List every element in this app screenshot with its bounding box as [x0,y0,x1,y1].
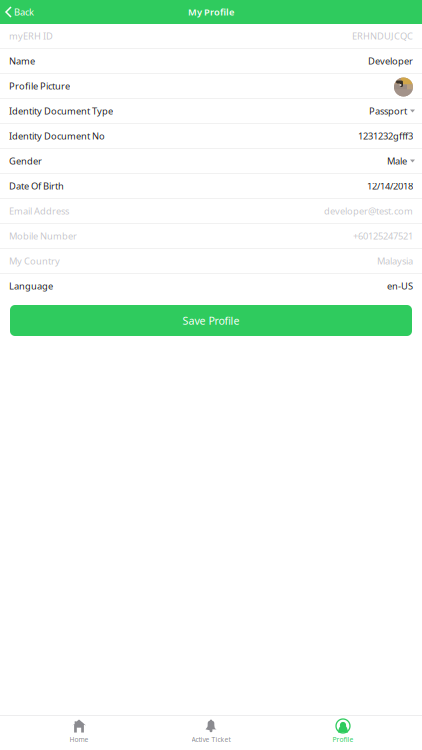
staticText: Back [14,6,34,18]
staticText: Identity Document Type [9,105,113,117]
button[interactable]: Home [13,716,145,750]
button[interactable]: Mobile Number [0,224,422,248]
staticText: Gender [9,155,42,167]
staticText: My Profile [188,6,234,18]
staticText: Date Of Birth [9,180,64,192]
button[interactable]: Profile [277,716,409,750]
button[interactable]: Language [0,274,422,298]
staticText: 12/14/2018 [367,180,413,192]
button[interactable]: Back [0,0,39,24]
staticText: Language [9,280,53,292]
button[interactable]: Date Of Birth [0,174,422,198]
staticText: My Country [9,255,60,267]
button[interactable]: My Country [0,249,422,273]
staticText: Save Profile [182,313,239,328]
staticText: Mobile Number [9,230,77,242]
button[interactable]: Email Address [0,199,422,223]
staticText: Active Ticket [191,735,230,744]
staticText: Passport [369,105,407,117]
staticText: 1231232gfff3 [358,130,413,142]
button[interactable]: Active Ticket [145,716,277,750]
staticText: Name [9,55,35,67]
button[interactable]: Save Profile [10,305,412,336]
button[interactable]: myERH ID [0,24,422,48]
button[interactable]: Identity Document Type [0,99,422,123]
staticText: Home [69,735,88,744]
staticText: +60125247521 [353,230,413,242]
button[interactable]: Name [0,49,422,73]
staticText: myERH ID [9,30,53,42]
button[interactable]: Gender [0,149,422,173]
staticText: en-US [387,280,413,292]
button[interactable]: Identity Document No [0,124,422,148]
staticText: Malaysia [377,255,413,267]
staticText: Profile Picture [9,80,70,92]
staticText: Profile [332,735,353,744]
button[interactable]: Profile Picture [0,74,422,98]
staticText: Developer [368,55,413,67]
staticText: Male [387,155,407,167]
staticText: Identity Document No [9,130,105,142]
staticText: developer@test.com [324,205,413,217]
staticText: ERHNDUJCQC [352,30,413,42]
staticText: Email Address [9,205,69,217]
